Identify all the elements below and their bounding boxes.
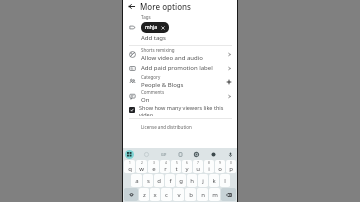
staticText: 0 [230,161,232,165]
button[interactable]: Backspace [221,188,236,201]
staticText: c [165,191,168,199]
staticText: More options [140,1,191,12]
staticText: r [164,165,167,173]
staticText: 3 [153,161,155,165]
button[interactable]: f [165,174,175,187]
button[interactable]: Show how many viewers like this video [123,104,237,116]
staticText: o [218,165,222,173]
staticText: 2 [141,161,143,165]
staticText: i [208,165,210,173]
staticText: u [196,165,200,173]
staticText: Shorts remixing [141,47,175,53]
button[interactable]: v [173,188,184,201]
button[interactable]: z [139,188,149,201]
button[interactable]: Shift [124,188,138,201]
button[interactable]: h [187,174,197,187]
staticText: Add paid promotion label [141,64,213,72]
staticText: 5 [176,161,178,165]
button[interactable]: 4 [160,160,170,173]
button[interactable]: j [198,174,208,187]
staticText: f [169,177,172,185]
button[interactable]: Add paid promotion label [123,62,237,74]
staticText: Add tags [141,34,166,42]
staticText: l [224,177,226,185]
button[interactable]: Add tags [123,33,237,43]
staticText: w [139,165,144,173]
staticText: People & Blogs [141,81,184,89]
staticText: 7 [197,161,199,165]
button[interactable]: 8 [204,160,214,173]
staticText: 8 [208,161,210,165]
button[interactable]: GIF [159,150,168,159]
button[interactable]: d [154,174,164,187]
button[interactable]: s [143,174,153,187]
button[interactable]: Category [123,74,237,89]
button[interactable]: a [131,174,142,187]
button[interactable]: x [150,188,160,201]
staticText: n [201,191,205,199]
staticText: d [157,177,161,185]
staticText: Allow video and audio remixing [141,54,227,62]
staticText: t [175,165,178,173]
staticText: q [128,165,132,173]
staticText: h [190,177,194,185]
button[interactable]: Stickers [142,150,151,159]
button[interactable]: 7 [193,160,203,173]
staticText: s [147,177,150,185]
button[interactable]: Voice input [226,150,235,159]
staticText: 4 [165,161,167,165]
staticText: mhja [145,24,158,31]
button[interactable]: Comments [123,89,237,104]
button[interactable]: Keyboard modes [125,150,134,159]
button[interactable]: n [197,188,208,201]
staticText: j [202,177,204,185]
button[interactable]: 3 [148,160,159,173]
button[interactable]: b [185,188,196,201]
staticText: 9 [219,161,221,165]
button[interactable]: k [209,174,219,187]
staticText: Tags [141,14,151,20]
button[interactable]: Settings [192,150,201,159]
button[interactable]: 1 [124,160,135,173]
staticText: Show how many viewers like this video [139,104,232,116]
staticText: k [212,177,216,185]
button[interactable]: Theme [209,150,218,159]
staticText: y [185,165,189,173]
staticText: m [212,191,218,199]
button[interactable]: mhja [141,22,169,33]
button[interactable]: 6 [182,160,192,173]
button[interactable]: g [176,174,186,187]
button[interactable]: m [209,188,220,201]
button[interactable]: 0 [226,160,236,173]
button[interactable]: Shorts remixing [123,47,237,62]
staticText: x [153,191,157,199]
staticText: e [152,165,156,173]
staticText: z [143,191,146,199]
button[interactable]: 9 [215,160,225,173]
staticText: v [177,191,181,199]
button[interactable]: c [161,188,172,201]
staticText: GIF [161,152,167,157]
staticText: g [179,177,183,185]
button[interactable]: 5 [171,160,181,173]
staticText: License and distribution [141,124,192,130]
staticText: p [229,165,233,173]
staticText: a [135,177,139,185]
staticText: 1 [129,161,131,165]
staticText: Category [141,74,161,80]
button[interactable]: Back [126,1,137,12]
button[interactable]: 2 [136,160,147,173]
staticText: 6 [186,161,188,165]
staticText: b [189,191,193,199]
staticText: On [141,96,150,104]
button[interactable]: Clipboard [176,150,185,159]
staticText: Comments [141,89,165,95]
button[interactable]: l [220,174,230,187]
